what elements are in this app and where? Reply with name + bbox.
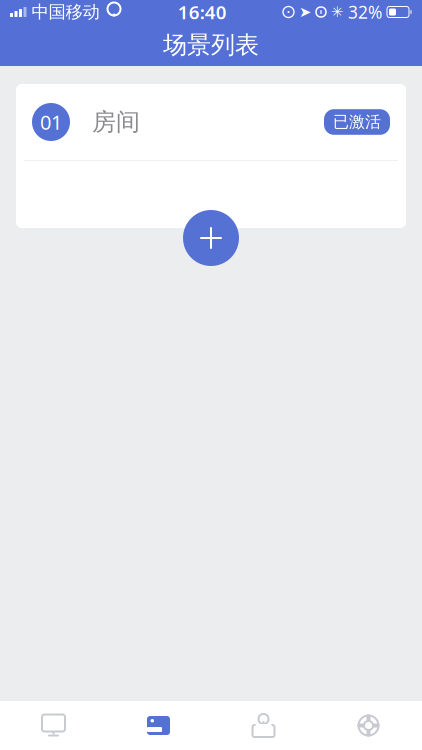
button[interactable]: Locations: [211, 701, 316, 750]
button[interactable]: Devices: [1, 701, 106, 750]
staticText: 01: [40, 109, 62, 135]
staticText: ✳: [331, 4, 343, 20]
staticText: 房间: [92, 107, 140, 137]
button[interactable]: Add scene: [183, 210, 239, 266]
staticText: 中国移动: [31, 1, 99, 23]
staticText: 场景列表: [163, 30, 259, 60]
staticText: 已激活: [333, 112, 381, 132]
staticText: ➤: [299, 4, 311, 20]
button[interactable]: Scenes: [106, 701, 211, 750]
staticText: 32%: [348, 0, 382, 23]
button[interactable]: Settings: [316, 701, 421, 750]
staticText: 16:40: [178, 0, 227, 24]
button[interactable]: 01: [16, 84, 406, 160]
